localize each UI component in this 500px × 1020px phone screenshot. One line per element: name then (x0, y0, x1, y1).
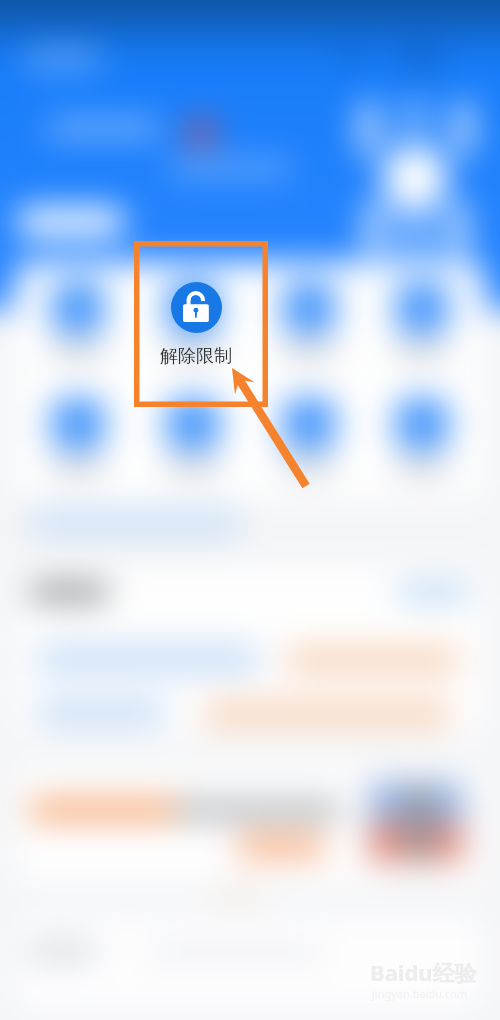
staticText: 解除限制 (160, 345, 232, 368)
staticText: Baidu经验 (370, 957, 477, 987)
other: 解除限制 (171, 282, 222, 333)
staticText: jingyan.baidu.com (372, 986, 468, 1001)
other: 指向解除限制按钮 (0, 0, 500, 1020)
button[interactable]: 解除限制 (134, 241, 268, 407)
